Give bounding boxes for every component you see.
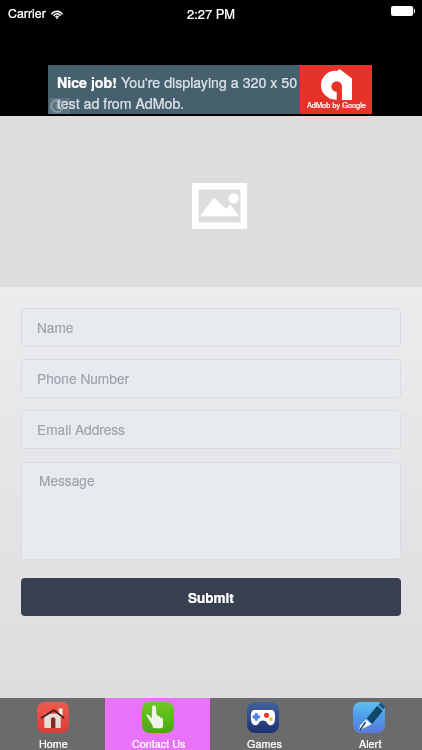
button[interactable]: Ad information xyxy=(49,98,70,114)
staticText: Name xyxy=(37,317,74,337)
button[interactable]: Nice job! xyxy=(48,65,372,114)
staticText: Contact Us xyxy=(132,736,186,750)
button[interactable]: Alert xyxy=(316,698,422,750)
button[interactable]: Submit xyxy=(21,578,401,616)
button[interactable]: Home xyxy=(0,698,105,750)
staticText: Games xyxy=(247,736,282,750)
staticText: Carrier xyxy=(8,4,46,22)
staticText: Phone Number xyxy=(37,368,130,388)
button[interactable]: Phone Number xyxy=(21,359,401,398)
staticText: Nice job! xyxy=(57,72,121,92)
other: Contact Us xyxy=(142,702,174,733)
staticText: AdMob by Google xyxy=(307,100,366,111)
staticText: test ad from AdMob. xyxy=(57,93,185,113)
staticText: Email Address xyxy=(37,419,125,439)
staticText: You're displaying a 320 x 50 xyxy=(121,72,298,92)
button[interactable]: Contact Us xyxy=(105,698,210,750)
staticText: Home xyxy=(39,736,68,750)
button[interactable]: Name xyxy=(21,308,401,347)
staticText: 2:27 PM xyxy=(187,4,236,22)
button[interactable]: Message xyxy=(21,462,401,560)
other: Games xyxy=(247,702,279,733)
staticText: Submit xyxy=(188,588,234,607)
button[interactable]: Email Address xyxy=(21,410,401,449)
button[interactable]: Games xyxy=(210,698,316,750)
staticText: Alert xyxy=(359,736,382,750)
staticText: Message xyxy=(39,470,95,490)
other: Home xyxy=(37,702,69,733)
other: Alert xyxy=(353,702,385,733)
